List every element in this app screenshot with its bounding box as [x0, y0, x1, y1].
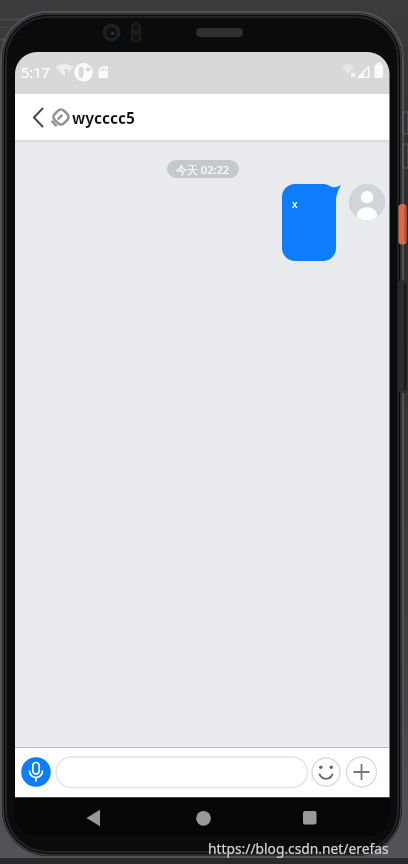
staticText: 今天 02:22 — [176, 162, 229, 177]
button[interactable] — [56, 757, 308, 788]
button[interactable] — [186, 801, 222, 835]
staticText: https://blog.csdn.net/erefas — [208, 839, 389, 858]
button[interactable] — [24, 96, 58, 138]
button[interactable] — [346, 757, 377, 788]
staticText: 5:17 — [21, 62, 50, 82]
staticText: x — [292, 197, 298, 211]
button[interactable] — [294, 800, 329, 834]
button[interactable] — [312, 758, 341, 787]
button[interactable] — [76, 800, 112, 834]
staticText: ? — [64, 67, 68, 79]
button[interactable] — [349, 184, 385, 220]
button[interactable] — [21, 757, 52, 788]
button[interactable]: wycccc5 — [72, 107, 135, 128]
button[interactable] — [282, 184, 341, 261]
